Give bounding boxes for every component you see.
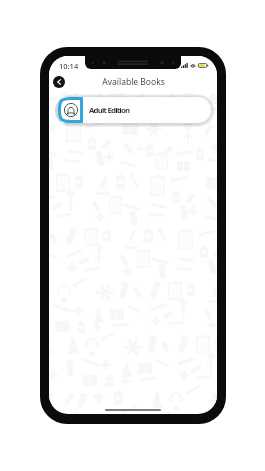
staticText: 10:14 [59,61,79,71]
button[interactable]: Adult Edition [49,97,217,123]
staticText: Adult Edition [89,105,130,116]
button[interactable]: Back [53,76,65,88]
staticText: Available Books [102,76,165,88]
